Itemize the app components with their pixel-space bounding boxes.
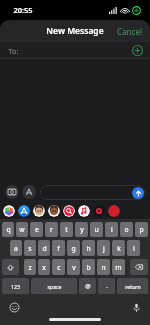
button[interactable]: s: [24, 240, 36, 256]
button[interactable]: u: [90, 222, 103, 237]
staticText: c: [57, 263, 61, 272]
button[interactable]: Apps: [22, 185, 36, 199]
button[interactable]: a: [10, 240, 22, 256]
button[interactable]: .: [98, 278, 115, 294]
button[interactable]: t: [60, 222, 73, 237]
button[interactable]: Search: [63, 205, 75, 217]
staticText: To:: [8, 46, 19, 56]
staticText: f: [57, 244, 60, 253]
button[interactable]: p: [135, 222, 148, 237]
button[interactable]: e: [30, 222, 43, 237]
button[interactable]: 123: [2, 278, 29, 294]
button[interactable]: Send: [40, 185, 145, 200]
button[interactable]: h: [82, 240, 95, 256]
button[interactable]: space: [31, 278, 77, 294]
button[interactable]: j: [97, 240, 110, 256]
staticText: z: [28, 263, 32, 272]
staticText: @: [85, 282, 91, 290]
button[interactable]: Photos: [3, 205, 15, 217]
button[interactable]: Cancel: [109, 22, 150, 41]
button[interactable]: Dictate: [130, 301, 142, 313]
staticText: w: [19, 225, 25, 234]
button[interactable]: w: [16, 222, 28, 237]
staticText: 20:55: [13, 5, 33, 15]
staticText: d: [42, 244, 47, 253]
button[interactable]: b: [82, 259, 95, 275]
button[interactable]: App Store: [18, 205, 30, 217]
button[interactable]: Memoji: [33, 205, 45, 217]
button[interactable]: y: [75, 222, 88, 237]
staticText: New Message: [46, 25, 104, 37]
button[interactable]: d: [38, 240, 50, 256]
staticText: r: [50, 225, 53, 234]
staticText: b: [86, 263, 91, 272]
staticText: g: [71, 244, 76, 253]
staticText: p: [139, 225, 144, 234]
staticText: k: [117, 244, 121, 253]
staticText: m: [115, 263, 122, 272]
staticText: space: [47, 283, 62, 290]
staticText: 123: [11, 283, 20, 290]
button[interactable]: i: [105, 222, 118, 237]
staticText: l: [133, 244, 135, 253]
button[interactable]: q: [2, 222, 14, 237]
staticText: s: [28, 244, 32, 253]
staticText: v: [72, 263, 76, 272]
button[interactable]: Apple TV: [93, 205, 105, 217]
button[interactable]: return: [117, 278, 148, 294]
staticText: .: [106, 282, 108, 290]
button[interactable]: g: [67, 240, 80, 256]
button[interactable]: n: [97, 259, 110, 275]
staticText: i: [111, 225, 113, 234]
staticText: return: [125, 283, 141, 290]
button[interactable]: Emoji: [8, 301, 20, 313]
staticText: e: [35, 225, 39, 234]
button[interactable]: Memoji: [48, 205, 60, 217]
staticText: x: [42, 263, 46, 272]
button[interactable]: k: [112, 240, 125, 256]
button[interactable]: Music: [78, 205, 90, 217]
button[interactable]: o: [120, 222, 133, 237]
staticText: t: [65, 225, 68, 234]
button[interactable]: z: [24, 259, 36, 275]
staticText: h: [86, 244, 91, 253]
staticText: n: [101, 263, 106, 272]
button[interactable]: More: [108, 205, 120, 217]
staticText: j: [103, 244, 105, 253]
button[interactable]: m: [112, 259, 125, 275]
button[interactable]: @: [79, 278, 96, 294]
staticText: o: [124, 225, 129, 234]
staticText: y: [80, 225, 84, 234]
button[interactable]: f: [52, 240, 65, 256]
button[interactable]: Camera: [5, 185, 19, 199]
button[interactable]: v: [67, 259, 80, 275]
button[interactable]: Send: [132, 187, 144, 199]
button[interactable]: Shift: [2, 259, 19, 275]
button[interactable]: Backspace: [130, 259, 148, 275]
button[interactable]: l: [127, 240, 140, 256]
staticText: a: [14, 244, 18, 253]
staticText: q: [6, 225, 11, 234]
button[interactable]: r: [45, 222, 58, 237]
button[interactable]: Add contact: [131, 44, 144, 57]
staticText: Cancel: [117, 26, 142, 37]
button[interactable]: x: [38, 259, 50, 275]
staticText: u: [94, 225, 99, 234]
button[interactable]: c: [52, 259, 65, 275]
